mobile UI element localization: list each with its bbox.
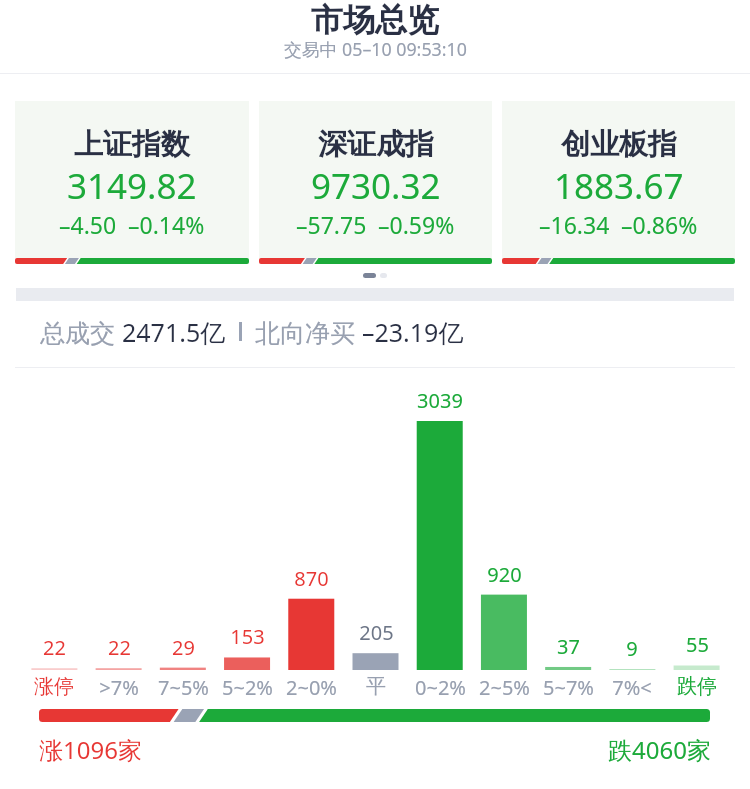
staticText: 920: [487, 561, 522, 588]
staticText: 205: [359, 619, 394, 646]
staticText: 0~2%: [415, 674, 466, 701]
staticText: 870: [294, 565, 329, 592]
button[interactable]: 创业板指: [502, 101, 735, 264]
staticText: 北向净买: [255, 315, 362, 349]
staticText: 9730.32: [311, 162, 441, 210]
staticText: 7~5%: [158, 674, 209, 701]
staticText: 深证成指: [318, 126, 434, 163]
staticText: 跌4060家: [608, 733, 711, 766]
staticText: 交易中 05–10 09:53:10: [284, 37, 467, 61]
staticText: –0.14%: [128, 209, 205, 240]
button[interactable]: 上证指数: [15, 101, 249, 264]
staticText: 5~2%: [222, 674, 273, 701]
staticText: 5~7%: [543, 674, 594, 701]
staticText: –0.59%: [378, 209, 455, 240]
staticText: >7%: [99, 674, 139, 701]
staticText: 涨停: [34, 674, 74, 699]
staticText: 市场总览: [311, 0, 439, 40]
staticText: 2~0%: [286, 674, 337, 701]
staticText: 2~5%: [479, 674, 530, 701]
staticText: 涨1096家: [39, 733, 142, 766]
staticText: 平: [366, 674, 386, 699]
button[interactable]: 深证成指: [259, 101, 492, 264]
staticText: 创业板指: [561, 126, 677, 163]
staticText: –0.86%: [621, 209, 698, 240]
staticText: 上证指数: [74, 126, 190, 163]
staticText: 3039: [417, 387, 463, 414]
staticText: 37: [557, 633, 580, 660]
staticText: 29: [172, 634, 195, 661]
staticText: 2471.5亿: [122, 315, 226, 349]
staticText: –4.50: [59, 209, 117, 240]
staticText: 55: [686, 631, 709, 658]
staticText: 1883.67: [554, 162, 684, 210]
staticText: 22: [108, 634, 131, 661]
staticText: 153: [230, 623, 265, 650]
staticText: 跌停: [677, 674, 717, 699]
staticText: 7%<: [612, 674, 652, 701]
staticText: –57.75: [296, 209, 367, 240]
staticText: 9: [626, 635, 638, 662]
staticText: 总成交: [40, 315, 122, 349]
staticText: 22: [43, 634, 66, 661]
staticText: –16.34: [539, 209, 610, 240]
staticText: 3149.82: [67, 162, 197, 210]
staticText: –23.19亿: [362, 315, 464, 349]
